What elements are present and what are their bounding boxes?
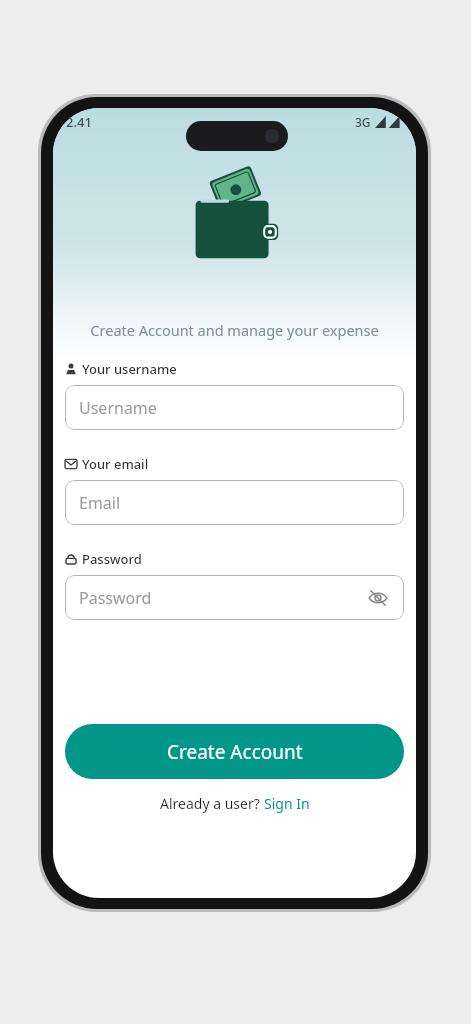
staticText: Username [79, 397, 157, 419]
button[interactable]: Username [65, 385, 404, 430]
staticText: Password [82, 550, 142, 568]
staticText: 2.41 [66, 113, 92, 131]
button[interactable]: Sign In [264, 794, 310, 813]
staticText: 3G [355, 114, 371, 130]
button[interactable]: Email [65, 480, 404, 525]
staticText: Your email [82, 455, 149, 473]
staticText: Create Account and manage your expense [53, 320, 416, 340]
staticText: Your username [82, 360, 177, 378]
button[interactable]: Password [65, 575, 404, 620]
staticText: Email [79, 492, 121, 514]
staticText: Already a user? [160, 794, 264, 813]
button[interactable]: Show password [366, 586, 390, 610]
staticText: Password [79, 587, 152, 609]
staticText: Create Account [167, 739, 303, 765]
staticText: Sign In [264, 794, 310, 813]
button[interactable]: Create Account [65, 724, 404, 779]
